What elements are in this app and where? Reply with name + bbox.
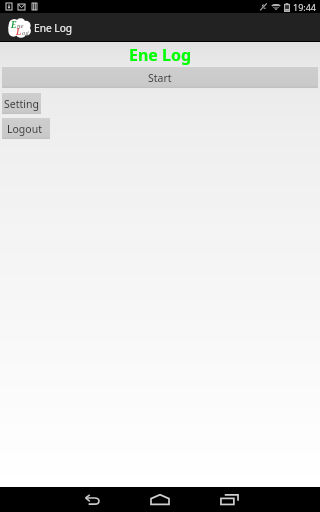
- staticText: Start: [148, 71, 172, 85]
- button[interactable]: Setting: [2, 93, 41, 114]
- staticText: Ene Log: [34, 21, 73, 35]
- staticText: E: [11, 19, 17, 30]
- staticText: og: [22, 29, 29, 37]
- staticText: L: [16, 26, 22, 37]
- staticText: Setting: [4, 97, 39, 111]
- button[interactable]: Logout: [2, 118, 50, 139]
- staticText: Logout: [7, 122, 42, 136]
- staticText: Ene Log: [129, 44, 192, 66]
- staticText: 19:44: [293, 1, 317, 13]
- button[interactable]: Recent apps: [209, 487, 249, 512]
- button[interactable]: Start: [2, 67, 318, 88]
- staticText: ne: [17, 22, 24, 30]
- button[interactable]: Home: [140, 487, 180, 512]
- button[interactable]: Back: [71, 487, 111, 512]
